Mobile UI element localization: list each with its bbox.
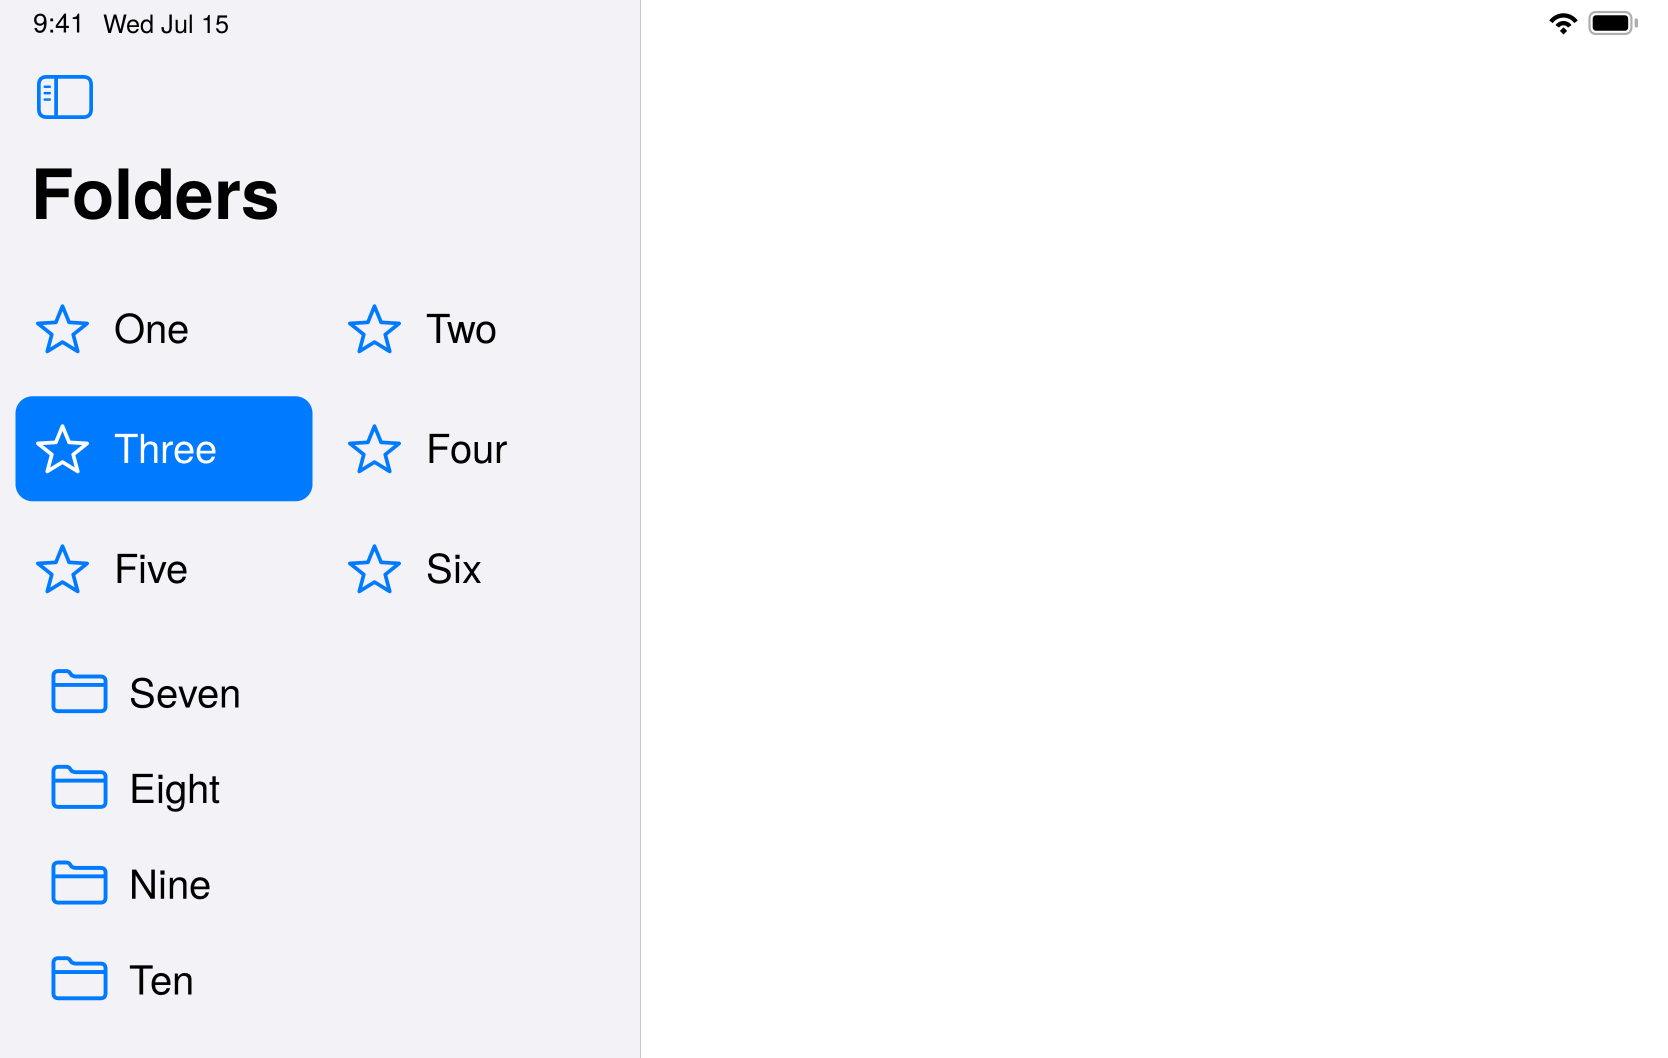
staticText: Eight: [129, 757, 220, 814]
staticText: One: [114, 297, 189, 354]
staticText: Folders: [31, 141, 280, 240]
staticText: Five: [114, 537, 188, 594]
button[interactable]: Two: [327, 276, 624, 381]
button[interactable]: One: [15, 276, 312, 381]
button[interactable]: Nine: [0, 835, 640, 930]
staticText: Six: [426, 537, 482, 594]
staticText: Wed Jul 15: [103, 4, 229, 40]
button[interactable]: Three: [15, 396, 312, 501]
staticText: Ten: [129, 949, 194, 1006]
staticText: Four: [426, 417, 507, 474]
staticText: Three: [114, 417, 217, 474]
button[interactable]: Seven: [0, 643, 640, 739]
staticText: Two: [426, 297, 497, 354]
button[interactable]: Six: [327, 516, 624, 621]
button[interactable]: Toggle Sidebar: [0, 46, 104, 130]
button[interactable]: Eight: [0, 739, 640, 835]
button[interactable]: Four: [327, 396, 624, 501]
button[interactable]: Ten: [0, 930, 640, 1026]
staticText: Seven: [129, 661, 241, 719]
staticText: 9:41: [33, 2, 85, 40]
button[interactable]: Five: [15, 516, 312, 621]
staticText: Nine: [129, 853, 211, 910]
